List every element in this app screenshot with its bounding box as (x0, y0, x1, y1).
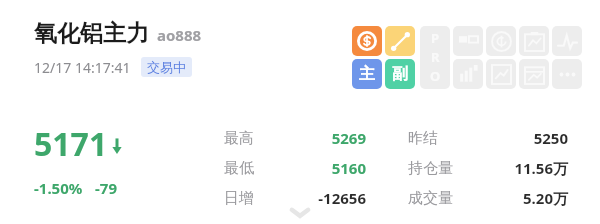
staticText: 5171 (34, 122, 108, 166)
button[interactable]: Funds (486, 26, 516, 56)
button[interactable]: More (552, 59, 582, 89)
staticText: 主 (359, 64, 375, 84)
staticText: 最低 (224, 159, 282, 178)
button[interactable]: 持仓量 (408, 154, 568, 182)
staticText: P (431, 29, 440, 47)
staticText: 11.56万 (472, 158, 568, 178)
staticText: 日增 (224, 189, 282, 208)
button[interactable]: Calendar chart (519, 59, 549, 89)
staticText: 副 (392, 64, 408, 84)
staticText: R (431, 48, 440, 66)
button[interactable]: Expand (283, 205, 317, 221)
staticText: ao888 (157, 25, 202, 45)
button[interactable]: 日增 (224, 184, 366, 212)
staticText: 5.20万 (472, 188, 568, 208)
button[interactable]: Line chart (486, 59, 516, 89)
staticText: 12/17 14:17:41 (34, 58, 131, 77)
button[interactable]: 最低 (224, 154, 366, 182)
button[interactable]: 昨结 (408, 124, 568, 152)
staticText: 最高 (224, 129, 282, 148)
staticText: 昨结 (408, 129, 472, 148)
button[interactable]: 最高 (224, 124, 366, 152)
button[interactable]: Sub contract (385, 59, 415, 89)
staticText: 氧化铝主力 (34, 19, 149, 48)
button[interactable]: Bars (453, 59, 483, 89)
staticText: -79 (95, 178, 117, 198)
staticText: 5250 (472, 128, 568, 148)
staticText: 5269 (282, 128, 366, 148)
button[interactable]: Quote board (453, 26, 483, 56)
staticText: O (430, 67, 441, 85)
button[interactable]: Report (519, 26, 549, 56)
button[interactable]: 交易中 (141, 57, 192, 77)
button[interactable]: Capital flow (352, 26, 382, 56)
button[interactable]: Main contract (352, 59, 382, 89)
staticText: 成交量 (408, 189, 472, 208)
button[interactable]: PRO (420, 26, 450, 89)
staticText: 持仓量 (408, 159, 472, 178)
button[interactable]: Trend line (385, 26, 415, 56)
button[interactable]: 成交量 (408, 184, 568, 212)
staticText: 交易中 (147, 59, 186, 75)
button[interactable]: Volatility (552, 26, 582, 56)
staticText: -1.50% (34, 178, 83, 198)
staticText: 5160 (282, 158, 366, 178)
staticText: -12656 (282, 188, 366, 208)
